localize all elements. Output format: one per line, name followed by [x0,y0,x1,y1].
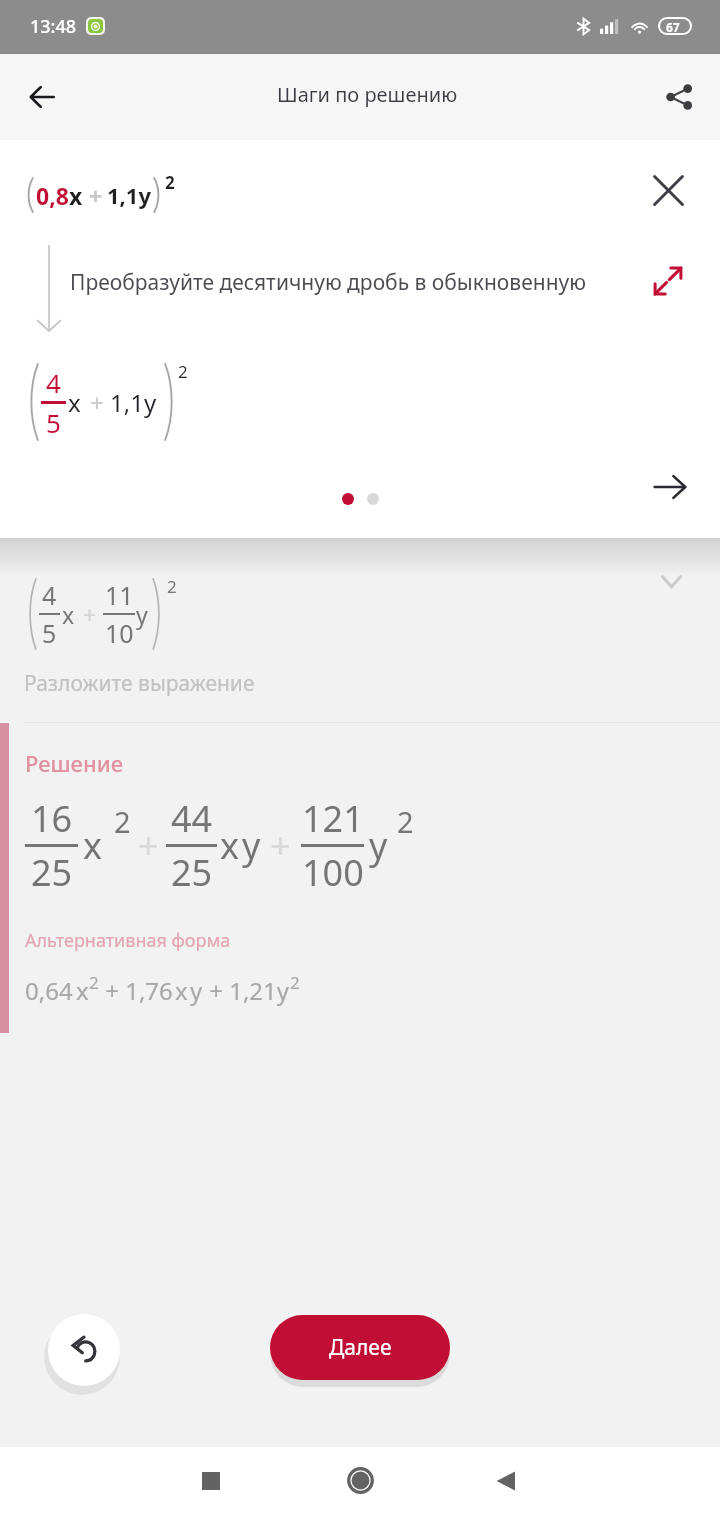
staticText: 67 [666,19,680,33]
staticText: 2 [167,575,177,598]
button[interactable]: Home [320,1444,400,1517]
staticText: Альтернативная форма [25,928,231,953]
staticText: 2 [89,971,99,994]
staticText: 10 [105,616,134,650]
staticText: 100 [302,848,364,897]
staticText: 13:48 [30,14,77,39]
staticText: 5 [46,405,61,440]
staticText: 0,64 [25,974,73,1007]
button[interactable]: Recent apps [171,1444,251,1517]
staticText: Шаги по решению [277,81,458,108]
staticText: x [62,599,75,630]
staticText: 2 [178,360,188,383]
staticText: + 1,21y [203,974,290,1007]
staticText: 16 [31,794,73,843]
staticText: x [175,974,188,1007]
staticText: 25 [171,848,213,897]
staticText: 2 [165,171,175,194]
staticText: x [68,386,81,419]
staticText: 25 [31,848,73,897]
staticText: x [83,821,103,870]
staticText: Преобразуйте десятичную дробь в обыкнове… [70,268,586,297]
staticText: 4 [42,578,57,612]
staticText: 1,1y [107,180,152,210]
staticText: y [190,974,203,1007]
staticText: + [270,821,291,870]
staticText: + [138,821,159,870]
staticText: 121 [302,794,364,843]
staticText: 44 [171,794,213,843]
button[interactable]: Fullscreen [636,249,700,313]
button[interactable]: Share [655,73,703,121]
staticText: 0,8 [36,180,69,211]
staticText: 5 [42,616,57,650]
staticText: 2 [397,802,414,841]
staticText: 2 [290,971,300,994]
staticText: + [89,180,103,211]
button[interactable]: Back [18,73,66,121]
staticText: Решение [25,748,124,778]
staticText: Разложите выражение [24,669,255,698]
button[interactable]: Back [466,1444,546,1517]
button[interactable]: Next step [638,455,702,519]
staticText: Далее [329,1333,392,1362]
staticText: y [242,821,261,870]
staticText: x [76,974,89,1007]
staticText: + 1,76 [99,974,173,1007]
button[interactable]: Undo [48,1314,120,1386]
staticText: y [369,821,388,870]
staticText: + [83,599,97,630]
button[interactable]: Close [636,158,700,222]
staticText: 11 [105,578,134,612]
staticText: 2 [114,802,131,841]
button[interactable]: Далее [270,1315,450,1380]
staticText: y [136,599,148,630]
staticText: x [220,821,240,870]
staticText: + [90,386,104,419]
staticText: x [69,180,83,211]
staticText: 1,1y [110,386,157,419]
staticText: 4 [46,365,61,400]
button[interactable]: Expand [639,549,703,613]
